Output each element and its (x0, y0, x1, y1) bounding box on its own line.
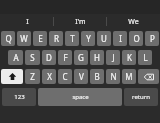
staticText: P (150, 33, 155, 44)
staticText: J (112, 52, 115, 63)
button[interactable]: We (107, 14, 160, 29)
staticText: D (46, 52, 52, 63)
staticText: O (133, 33, 140, 44)
staticText: N (110, 71, 117, 82)
staticText: F (63, 52, 68, 63)
button[interactable]: H (90, 50, 104, 65)
button[interactable]: I (113, 31, 127, 46)
staticText: L (143, 52, 148, 63)
button[interactable]: Q (1, 31, 15, 46)
button[interactable]: E (33, 31, 47, 46)
button[interactable]: O (129, 31, 143, 46)
button[interactable]: Delete (138, 69, 159, 84)
button[interactable]: I'm (54, 14, 107, 29)
staticText: A (13, 52, 19, 63)
staticText: V (79, 71, 84, 82)
staticText: S (30, 52, 35, 63)
button[interactable]: W (17, 31, 31, 46)
button[interactable]: F (58, 50, 72, 65)
staticText: space (72, 93, 89, 101)
staticText: X (47, 71, 52, 82)
button[interactable]: G (74, 50, 88, 65)
button[interactable]: A (8, 50, 23, 65)
staticText: G (78, 52, 84, 63)
button[interactable]: Y (81, 31, 95, 46)
button[interactable]: N (106, 69, 120, 84)
button[interactable]: J (106, 50, 120, 65)
button[interactable]: K (122, 50, 136, 65)
staticText: I (119, 33, 122, 44)
button[interactable]: R (49, 31, 63, 46)
staticText: I (26, 17, 29, 27)
button[interactable]: space (38, 88, 122, 106)
button[interactable]: I (0, 14, 54, 29)
staticText: I'm (75, 17, 86, 27)
staticText: Q (5, 33, 12, 44)
staticText: T (70, 33, 75, 44)
staticText: R (54, 33, 59, 44)
button[interactable]: Z (25, 69, 40, 84)
button[interactable]: B (90, 69, 104, 84)
staticText: H (94, 52, 100, 63)
staticText: E (38, 33, 43, 44)
button[interactable]: M (122, 69, 136, 84)
staticText: K (127, 52, 132, 63)
staticText: B (94, 71, 100, 82)
button[interactable]: 123 (2, 88, 36, 106)
staticText: 123 (14, 93, 25, 101)
staticText: return (132, 93, 150, 101)
staticText: C (62, 71, 68, 82)
staticText: M (125, 71, 133, 82)
button[interactable]: S (25, 50, 40, 65)
button[interactable]: T (65, 31, 79, 46)
staticText: Z (30, 71, 35, 82)
button[interactable]: V (74, 69, 88, 84)
button[interactable]: C (58, 69, 72, 84)
button[interactable]: X (42, 69, 56, 84)
button[interactable]: Shift (1, 69, 23, 84)
staticText: U (101, 33, 107, 44)
staticText: Y (86, 33, 91, 44)
button[interactable]: L (138, 50, 152, 65)
button[interactable]: P (145, 31, 159, 46)
button[interactable]: D (42, 50, 56, 65)
button[interactable]: U (97, 31, 111, 46)
button[interactable]: return (124, 88, 158, 106)
staticText: We (128, 17, 139, 27)
staticText: W (20, 33, 28, 44)
